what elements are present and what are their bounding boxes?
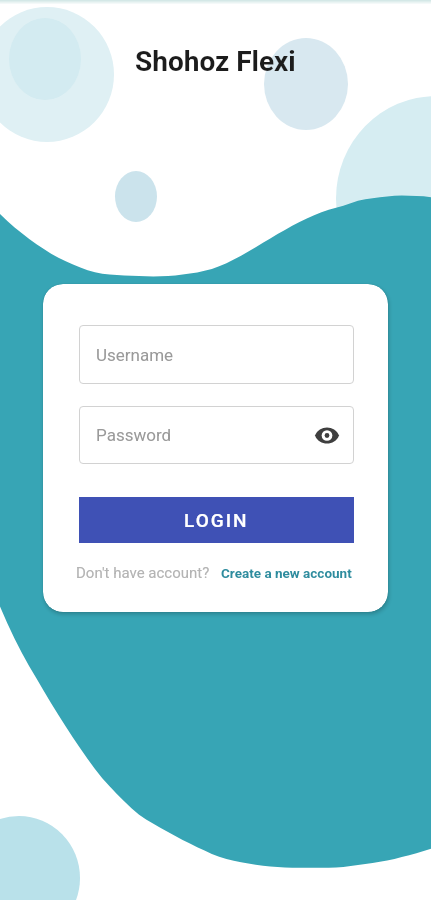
button[interactable]: Password	[79, 406, 354, 464]
staticText: Shohoz Flexi	[135, 45, 296, 78]
staticText: Don't have account?	[76, 564, 210, 582]
button[interactable]: Username	[79, 325, 354, 384]
staticText: LOGIN	[184, 509, 249, 531]
button[interactable]: Show password	[313, 421, 341, 449]
button[interactable]: Create a new account	[221, 565, 352, 581]
staticText: Password	[96, 425, 172, 445]
button[interactable]: LOGIN	[79, 497, 354, 543]
staticText: Create a new account	[221, 565, 352, 581]
staticText: Username	[96, 345, 174, 365]
